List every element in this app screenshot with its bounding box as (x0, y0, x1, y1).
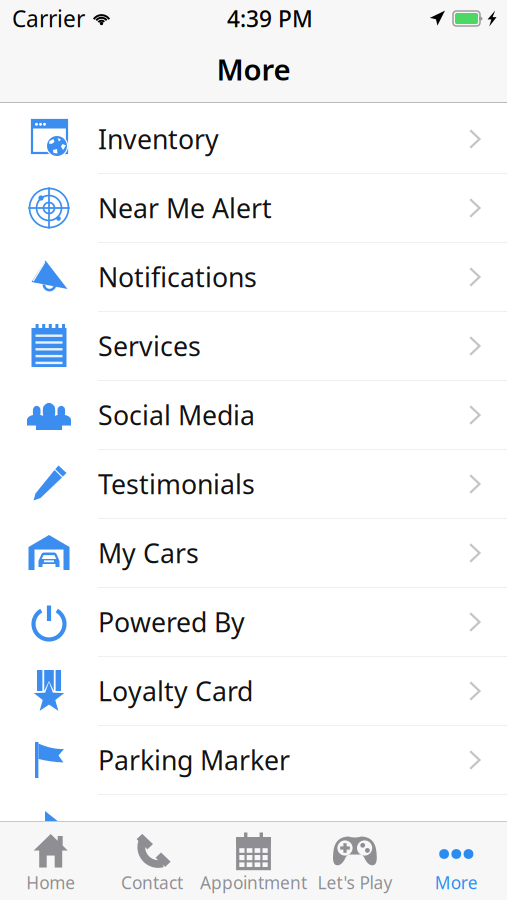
button[interactable]: Testimonials (0, 450, 507, 519)
button[interactable]: Parking Marker (0, 726, 507, 795)
button[interactable]: Services (0, 312, 507, 381)
staticText: More (435, 871, 478, 894)
button[interactable]: More (406, 822, 507, 900)
staticText: My Cars (98, 535, 199, 571)
staticText: Parking Marker (98, 742, 290, 778)
staticText: Home (26, 871, 75, 894)
staticText: Notifications (98, 259, 257, 295)
staticText: Near Me Alert (98, 190, 272, 226)
staticText: Powered By (98, 604, 245, 640)
button[interactable]: Let's Play (304, 822, 406, 900)
button[interactable]: Powered By (0, 588, 507, 657)
button[interactable]: Appointment (203, 822, 304, 900)
staticText: Contact (121, 871, 183, 894)
button[interactable]: My Cars (0, 519, 507, 588)
staticText: More (216, 49, 290, 88)
staticText: Services (98, 328, 201, 364)
staticText: Let's Play (317, 871, 392, 894)
button[interactable]: Contact (101, 822, 203, 900)
staticText: Inventory (98, 121, 219, 157)
staticText: Testimonials (98, 466, 255, 502)
staticText: Social Media (98, 397, 255, 433)
button[interactable]: Inventory (0, 105, 507, 174)
button[interactable]: Notifications (0, 243, 507, 312)
staticText: 4:39 PM (227, 3, 313, 33)
staticText: Loyalty Card (98, 673, 253, 709)
button[interactable]: Loyalty Card (0, 657, 507, 726)
button[interactable]: Home (0, 822, 101, 900)
button[interactable]: Social Media (0, 381, 507, 450)
staticText: Appointment (200, 871, 307, 894)
staticText: Carrier (12, 3, 85, 33)
button[interactable]: Near Me Alert (0, 174, 507, 243)
